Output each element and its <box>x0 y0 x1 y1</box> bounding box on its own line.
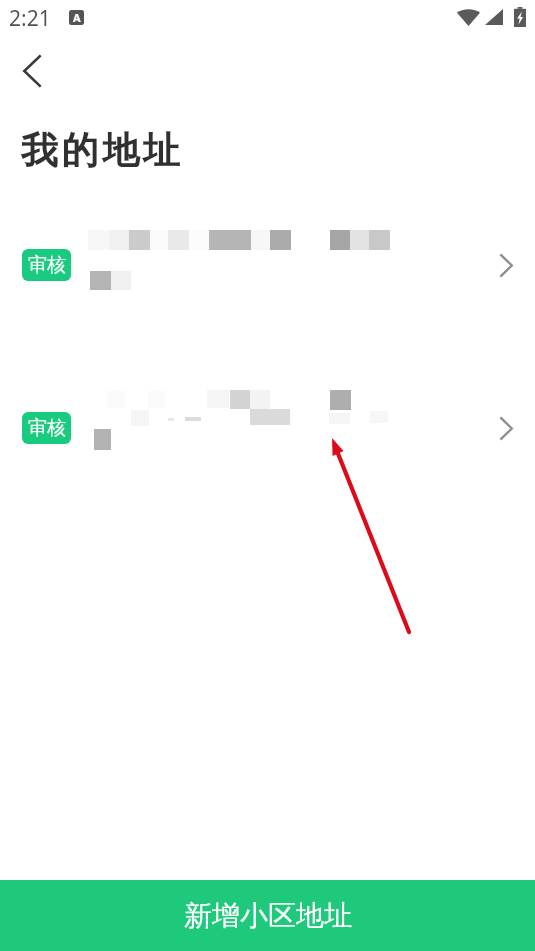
staticText: 审核 <box>28 416 66 440</box>
staticText: 2:21 <box>9 4 51 33</box>
staticText: A <box>73 10 81 25</box>
staticText: 新增小区地址 <box>184 898 352 933</box>
button[interactable]: Back <box>3 40 61 102</box>
staticText: 审核 <box>28 253 66 277</box>
button[interactable]: Address under review 1 <box>0 208 535 320</box>
staticText: 我的地址 <box>21 127 184 174</box>
button[interactable]: 新增小区地址 <box>0 880 535 951</box>
button[interactable]: Address under review 2 <box>0 371 535 483</box>
